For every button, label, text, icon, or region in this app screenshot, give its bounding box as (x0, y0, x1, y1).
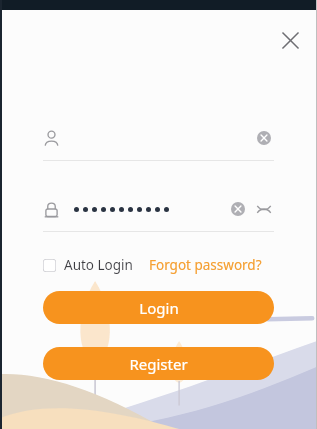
button[interactable]: Clear (254, 128, 274, 148)
button[interactable]: Clear (228, 199, 248, 219)
staticText: Login (139, 298, 179, 318)
button[interactable]: Close (273, 23, 307, 57)
staticText: Forgot password? (149, 256, 262, 274)
button[interactable]: Show password (254, 199, 274, 219)
button[interactable]: Login (43, 291, 274, 324)
staticText: Register (129, 354, 188, 374)
button[interactable]: Forgot password? (149, 256, 262, 274)
button[interactable]: Register (43, 347, 274, 380)
button[interactable]: Auto Login (43, 256, 133, 274)
staticText: Auto Login (64, 256, 133, 274)
